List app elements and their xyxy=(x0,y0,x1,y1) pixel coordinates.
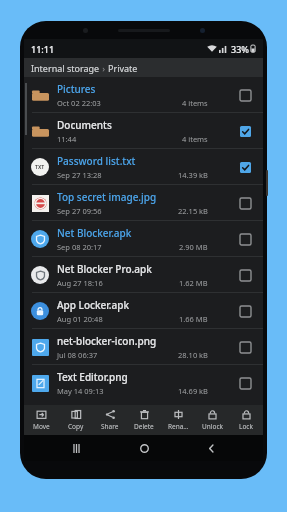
staticText: Copy xyxy=(68,422,84,431)
staticText: 4 items xyxy=(182,98,208,108)
button[interactable]: Net Blocker.apk xyxy=(24,221,263,256)
button[interactable]: App Locker.apk xyxy=(24,293,263,328)
button[interactable]: Share xyxy=(93,405,127,435)
staticText: Sep 27 13:28 xyxy=(57,170,102,180)
staticText: App Locker.apk xyxy=(57,298,130,312)
button[interactable]: Rena… xyxy=(161,405,195,435)
staticText: Unlock xyxy=(202,422,223,431)
staticText: Sep 08 20:17 xyxy=(57,242,102,252)
button[interactable]: Move xyxy=(24,405,59,435)
staticText: Net Blocker.apk xyxy=(57,226,132,240)
staticText: Lock xyxy=(239,422,253,431)
staticText: May 14 09:13 xyxy=(57,386,104,396)
staticText: 33% xyxy=(231,43,249,55)
button[interactable]: Documents xyxy=(24,113,263,148)
button[interactable]: Text Editor.png xyxy=(24,365,263,400)
button[interactable]: Back xyxy=(196,435,226,461)
staticText: Aug 27 18:16 xyxy=(57,278,103,288)
button[interactable]: Recents xyxy=(61,435,91,461)
staticText: › xyxy=(100,62,108,74)
staticText: Delete xyxy=(134,422,154,431)
button[interactable]: Select xyxy=(234,300,256,322)
staticText: Internal storage xyxy=(31,62,100,74)
staticText: 28.10 kB xyxy=(178,350,208,360)
staticText: TXT xyxy=(35,164,45,171)
staticText: Private xyxy=(108,62,138,74)
staticText: 11:44 xyxy=(57,134,77,144)
button[interactable]: Select xyxy=(234,228,256,250)
staticText: 14.69 kB xyxy=(178,386,208,396)
staticText: Text Editor.png xyxy=(57,370,128,384)
staticText: Aug 01 20:48 xyxy=(57,314,103,324)
button[interactable]: Select xyxy=(234,264,256,286)
button[interactable]: Select xyxy=(234,372,256,394)
button[interactable]: Select xyxy=(234,84,256,106)
button[interactable]: Select xyxy=(234,336,256,358)
staticText: 4 items xyxy=(182,134,208,144)
button[interactable]: Lock xyxy=(229,405,263,435)
staticText: Password list.txt xyxy=(57,154,136,168)
staticText: 1.62 MB xyxy=(179,278,208,288)
button[interactable]: TXT xyxy=(24,149,263,184)
button[interactable]: Select xyxy=(234,192,256,214)
staticText: 14.39 kB xyxy=(178,170,208,180)
staticText: Jul 08 06:37 xyxy=(57,350,98,360)
staticText: Rena… xyxy=(168,422,189,431)
staticText: 2.90 MB xyxy=(179,242,208,252)
button[interactable]: Unlock xyxy=(195,405,229,435)
staticText: Share xyxy=(101,422,119,431)
button[interactable]: Net Blocker Pro.apk xyxy=(24,257,263,292)
staticText: Move xyxy=(33,422,50,431)
button[interactable]: Home xyxy=(129,435,159,461)
button[interactable]: Pictures xyxy=(24,77,263,112)
staticText: Pictures xyxy=(57,82,96,96)
staticText: Net Blocker Pro.apk xyxy=(57,262,152,276)
staticText: 22.15 kB xyxy=(178,206,208,216)
staticText: 1.66 MB xyxy=(179,314,208,324)
staticText: Sep 27 09:56 xyxy=(57,206,102,216)
staticText: Top secret image.jpg xyxy=(57,190,157,204)
button[interactable]: Top secret image.jpg xyxy=(24,185,263,220)
staticText: Documents xyxy=(57,118,112,132)
button[interactable]: Selected xyxy=(234,156,256,178)
button[interactable]: Internal storage xyxy=(24,58,263,77)
staticText: 11:11 xyxy=(31,43,55,55)
button[interactable]: Copy xyxy=(59,405,93,435)
staticText: net-blocker-icon.png xyxy=(57,334,157,348)
button[interactable]: net-blocker-icon.png xyxy=(24,329,263,364)
staticText: Oct 02 22:03 xyxy=(57,98,101,108)
button[interactable]: Selected xyxy=(234,120,256,142)
button[interactable]: Delete xyxy=(127,405,161,435)
